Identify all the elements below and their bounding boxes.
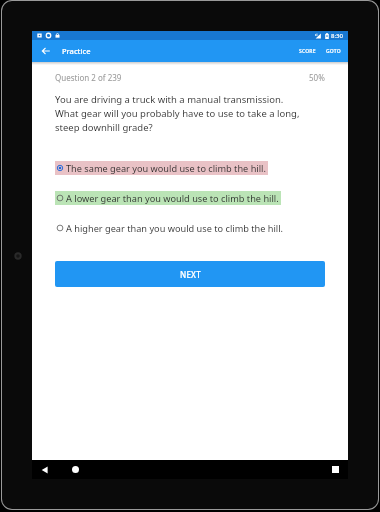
staticText: Question 2 of 239	[55, 72, 122, 83]
button[interactable]: The same gear you would use to climb the…	[55, 161, 268, 175]
staticText: A lower gear than you would use to climb…	[66, 192, 279, 205]
staticText: 8:30	[331, 32, 343, 40]
button[interactable]: Back	[35, 40, 57, 62]
button[interactable]: A lower gear than you would use to climb…	[55, 191, 281, 205]
staticText: NEXT	[180, 269, 201, 280]
staticText: Practice	[62, 46, 91, 56]
button[interactable]: SCORE	[294, 42, 321, 61]
staticText: The same gear you would use to climb the…	[66, 162, 266, 175]
staticText: You are driving a truck with a manual tr…	[55, 93, 300, 134]
button[interactable]: GOTO	[321, 42, 346, 61]
button[interactable]: A higher gear than you would use to clim…	[55, 221, 286, 235]
staticText: SCORE	[299, 48, 316, 55]
button[interactable]: Home	[67, 460, 84, 479]
staticText: 50%	[309, 72, 325, 83]
button[interactable]: Recents	[327, 460, 344, 479]
button[interactable]: NEXT	[55, 261, 325, 287]
staticText: A higher gear than you would use to clim…	[66, 222, 284, 235]
staticText: GOTO	[326, 48, 341, 55]
button[interactable]: Back	[36, 460, 53, 479]
